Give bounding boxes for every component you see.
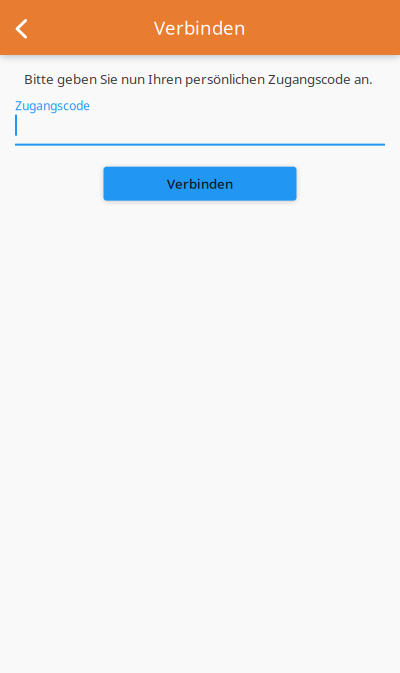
staticText: Bitte geben Sie nun Ihren persönlichen Z… xyxy=(24,70,373,88)
staticText: Verbinden xyxy=(167,175,233,192)
button[interactable]: Verbinden xyxy=(103,167,296,201)
staticText: Zugangscode xyxy=(15,98,90,114)
button[interactable]: Back xyxy=(0,5,38,49)
button[interactable]: Zugangscode xyxy=(15,98,385,146)
staticText: Verbinden xyxy=(154,15,246,40)
